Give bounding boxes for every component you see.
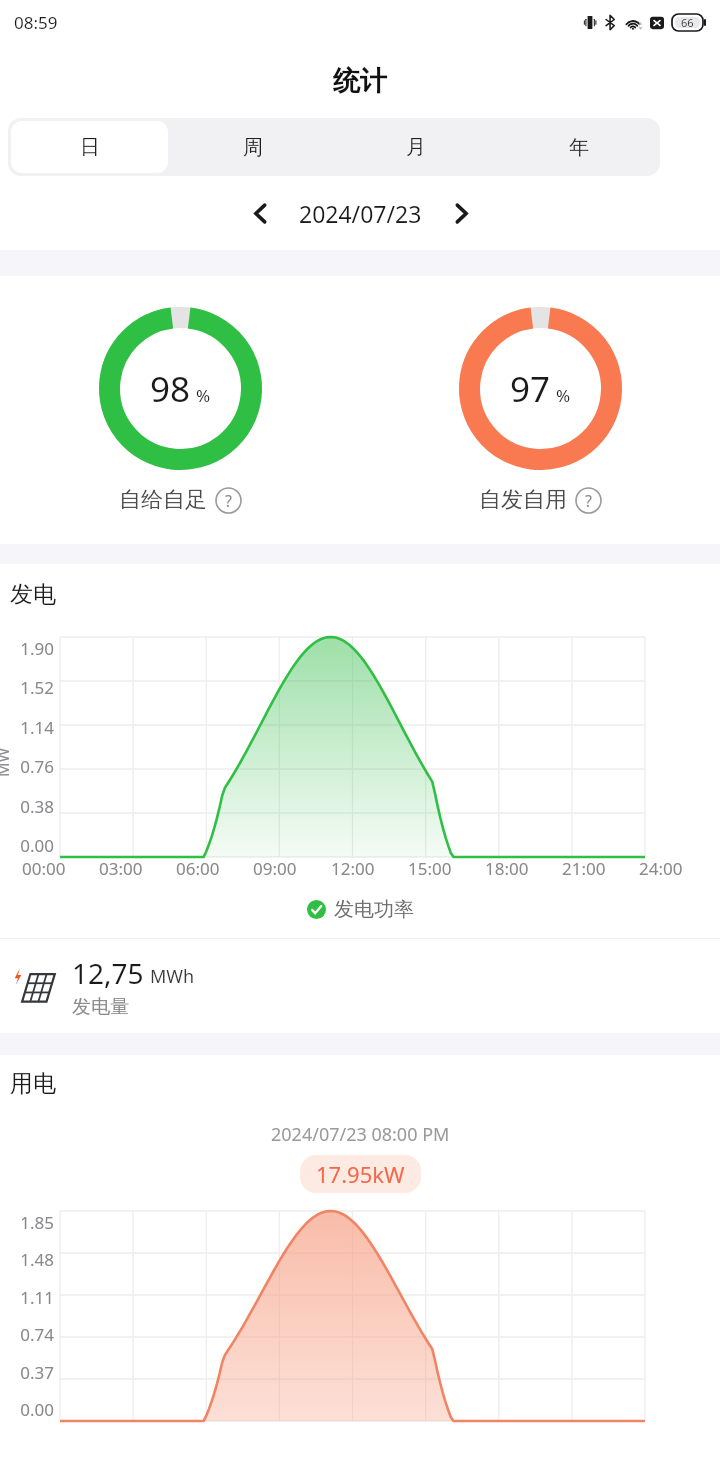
staticText: 发电功率 [334,897,414,922]
staticText: 周 [243,135,263,160]
staticText: MWh [150,964,195,989]
staticText: 66 [681,15,694,30]
button[interactable]: 97 [360,307,720,514]
staticText: 1.11 [20,1286,54,1309]
staticText: 1.52 [20,676,54,699]
button[interactable]: 月 [337,121,494,173]
button[interactable]: Help [575,487,602,514]
button[interactable]: 12,75 [0,939,720,1033]
staticText: 0.76 [20,755,54,778]
staticText: 09:00 [253,857,297,880]
staticText: 97 [510,365,551,413]
staticText: 年 [569,135,589,160]
button[interactable]: 日 [11,121,168,173]
staticText: 月 [406,135,426,160]
staticText: 0.00 [20,1398,54,1421]
staticText: MW [0,747,14,777]
staticText: 12:00 [331,857,375,880]
staticText: 0.00 [20,834,54,857]
staticText: % [196,384,211,407]
button[interactable]: 周 [174,121,331,173]
staticText: 0.38 [20,795,54,818]
staticText: 1.90 [20,637,54,660]
staticText: 2024/07/23 08:00 PM [271,1122,450,1147]
staticText: 24:00 [639,857,683,880]
staticText: 用电 [10,1069,56,1098]
staticText: 日 [80,135,100,160]
staticText: 发电 [10,580,56,609]
staticText: 15:00 [408,857,452,880]
staticText: 统计 [333,64,387,98]
button[interactable]: 年 [500,121,657,173]
staticText: 0.74 [20,1323,54,1346]
staticText: 98 [150,365,191,413]
staticText: 03:00 [99,857,143,880]
button[interactable]: Next day [434,186,488,240]
staticText: 00:00 [22,857,66,880]
button[interactable]: Previous day [233,186,287,240]
staticText: ? [585,490,592,512]
staticText: % [556,384,571,407]
staticText: 自给自足 [119,486,207,514]
staticText: 2024/07/23 [299,198,422,229]
button[interactable]: 98 [0,307,360,514]
staticText: 发电量 [72,995,129,1019]
staticText: ? [225,490,232,512]
button[interactable]: Help [215,487,242,514]
staticText: 12,75 [72,954,144,992]
staticText: 1.14 [20,716,54,739]
staticText: 06:00 [176,857,220,880]
staticText: 17.95kW [316,1159,405,1189]
staticText: 18:00 [485,857,529,880]
staticText: 1.85 [20,1211,54,1234]
staticText: 21:00 [562,857,606,880]
staticText: 08:59 [14,11,58,34]
staticText: 1.48 [20,1248,54,1271]
staticText: 0.37 [20,1361,54,1384]
staticText: 自发自用 [479,486,567,514]
